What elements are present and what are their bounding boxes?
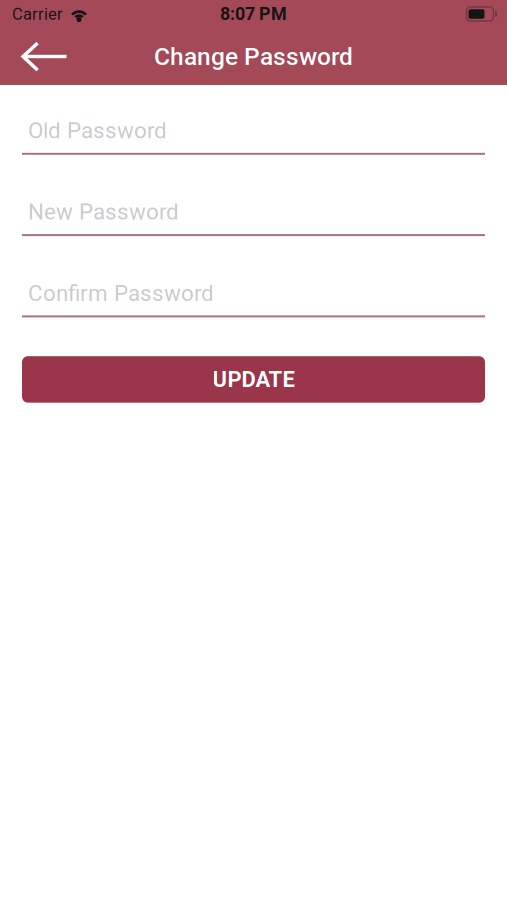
- staticText: 8:07 PM: [220, 3, 287, 24]
- staticText: Carrier: [12, 4, 63, 24]
- button[interactable]: UPDATE: [22, 356, 485, 403]
- staticText: Change Password: [154, 42, 353, 71]
- staticText: UPDATE: [212, 367, 294, 392]
- staticText: Confirm Password: [28, 280, 214, 306]
- button[interactable]: Back: [0, 28, 82, 85]
- staticText: Old Password: [28, 117, 167, 144]
- staticText: New Password: [28, 199, 179, 225]
